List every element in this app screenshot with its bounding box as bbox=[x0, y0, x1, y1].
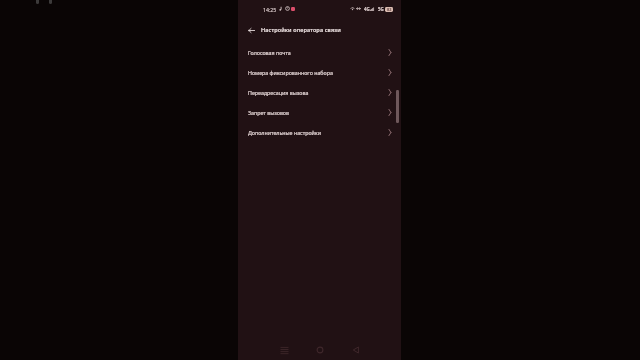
staticText: Настройки оператора связи bbox=[261, 26, 341, 33]
button[interactable]: Back bbox=[243, 22, 259, 38]
staticText: Дополнительные настройки bbox=[248, 129, 321, 136]
staticText: Переадресация вызова bbox=[248, 89, 309, 96]
button[interactable]: Recent apps bbox=[272, 338, 296, 360]
staticText: 14:25 bbox=[263, 6, 277, 13]
staticText: 5G bbox=[378, 6, 384, 12]
staticText: 82 bbox=[387, 7, 392, 12]
staticText: 4G bbox=[364, 6, 370, 12]
staticText: Номера фиксированного набора bbox=[248, 69, 333, 76]
button[interactable]: Back bbox=[344, 338, 368, 360]
button[interactable]: Запрет вызовов bbox=[238, 102, 401, 122]
button[interactable]: Дополнительные настройки bbox=[238, 122, 401, 142]
staticText: Запрет вызовов bbox=[248, 109, 289, 116]
button[interactable]: Номера фиксированного набора bbox=[238, 62, 401, 82]
button[interactable]: Home bbox=[308, 338, 332, 360]
button[interactable]: Голосовая почта bbox=[238, 42, 401, 62]
button[interactable]: Переадресация вызова bbox=[238, 82, 401, 102]
staticText: Голосовая почта bbox=[248, 49, 291, 56]
